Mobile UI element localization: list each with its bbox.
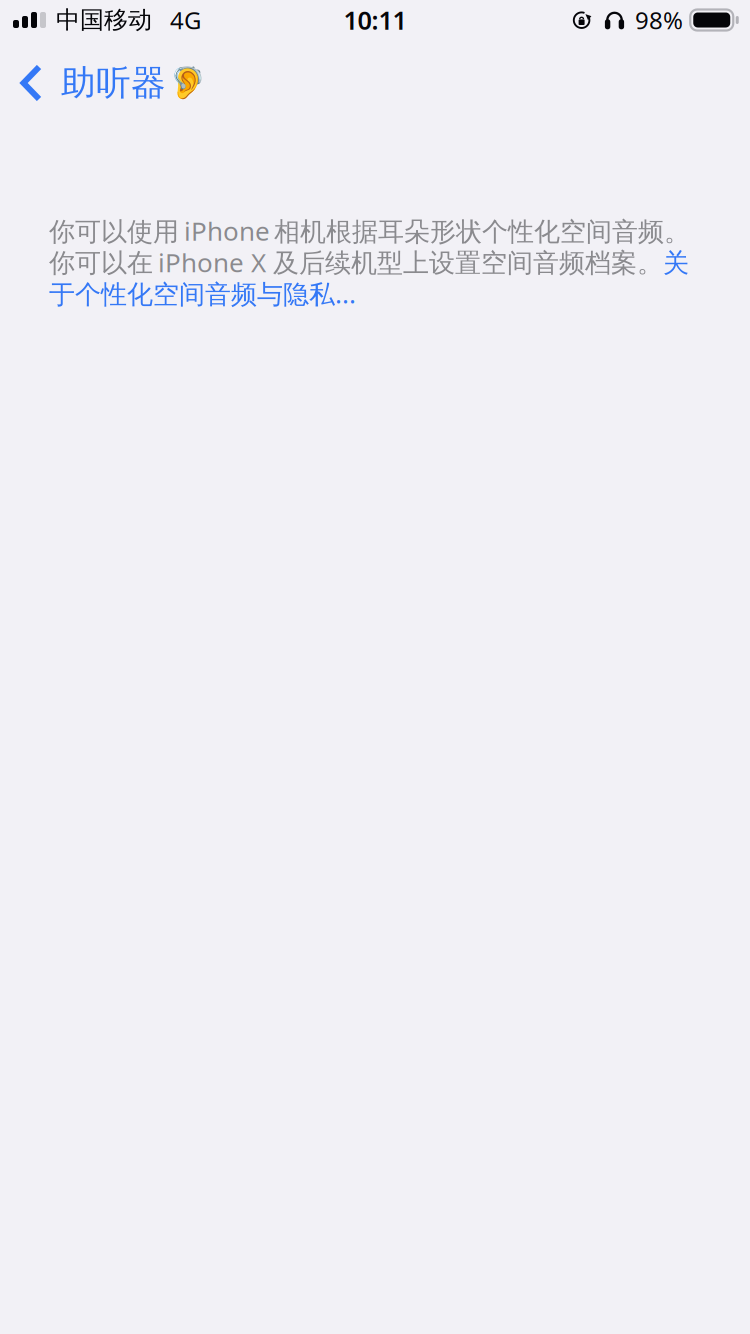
staticText: 🦻 <box>169 65 207 100</box>
staticText: 98% <box>635 4 683 36</box>
staticText: 4G <box>170 4 201 36</box>
staticText: 你可以使用 iPhone 相机根据耳朵形状个性化空间音频。你可以在 iPhone… <box>49 213 690 311</box>
button[interactable]: 关于个性化空间音频与隐私 <box>49 213 701 311</box>
button[interactable]: 助听器 <box>0 40 221 112</box>
staticText: 助听器 <box>61 62 166 104</box>
staticText: 中国移动 <box>56 5 152 35</box>
staticText: 10:11 <box>343 3 406 37</box>
